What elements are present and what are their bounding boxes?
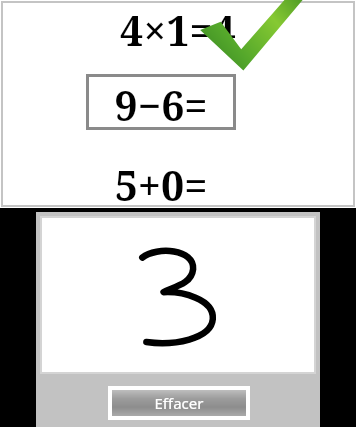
other: Drawing area bbox=[40, 216, 316, 374]
button[interactable]: Effacer bbox=[108, 386, 250, 420]
staticText: 9−6= bbox=[89, 77, 233, 127]
staticText: 4×1=4 bbox=[83, 2, 273, 58]
staticText: Effacer bbox=[114, 393, 244, 413]
staticText: 5+0= bbox=[86, 157, 236, 213]
